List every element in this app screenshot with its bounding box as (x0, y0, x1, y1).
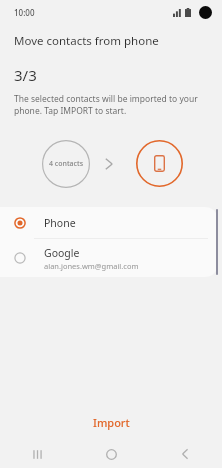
staticText: Import (93, 415, 130, 430)
button[interactable]: Phone (0, 207, 218, 238)
button[interactable]: Google (0, 239, 218, 277)
staticText: Google (44, 246, 80, 260)
staticText: alan.jones.wm@gmail.com (44, 261, 139, 271)
button[interactable]: Home (74, 440, 148, 468)
staticText: Move contacts from phone (14, 33, 159, 49)
staticText: The selected contacts will be imported t… (14, 93, 206, 117)
button[interactable]: Back (148, 440, 222, 468)
button[interactable]: Import (0, 404, 222, 440)
staticText: 4 contacts (49, 159, 84, 169)
button[interactable]: Recent apps (0, 440, 74, 468)
staticText: 10:00 (14, 7, 35, 18)
staticText: Phone (44, 216, 76, 230)
staticText: 3/3 (14, 65, 37, 85)
